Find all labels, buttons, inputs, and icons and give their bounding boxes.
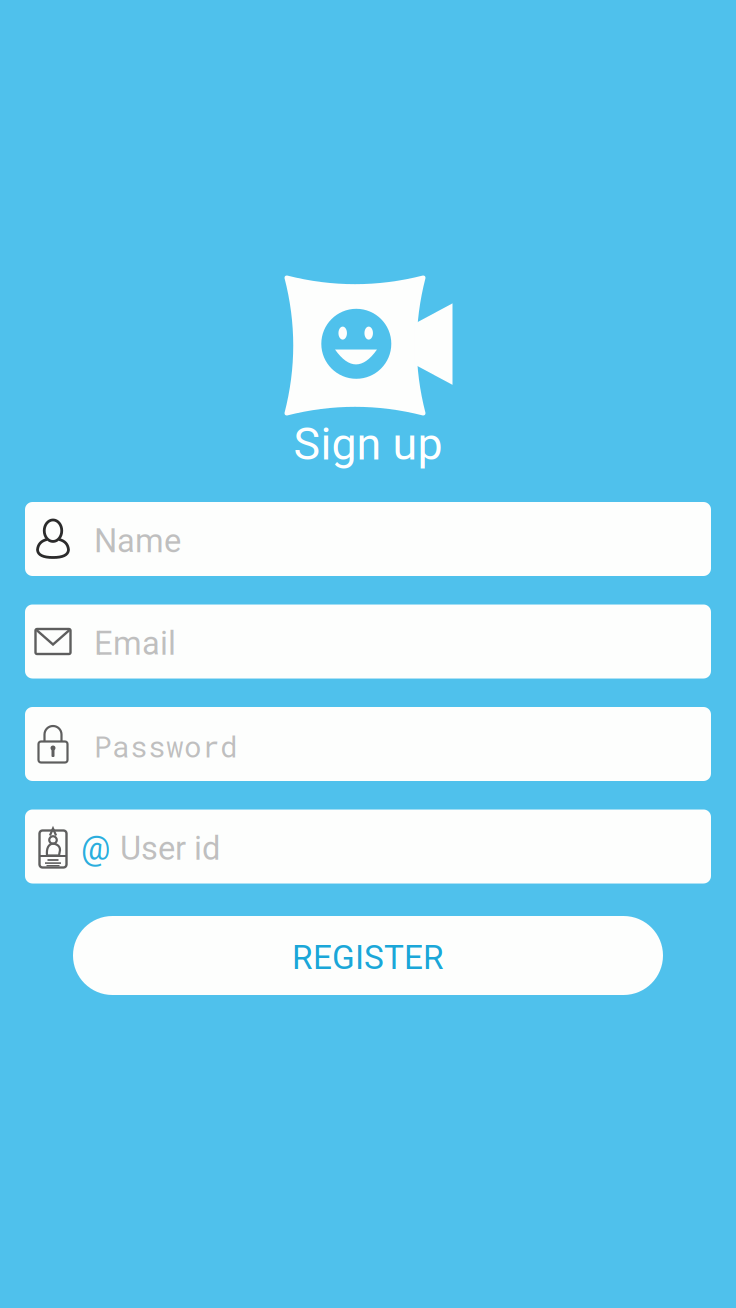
staticText: REGISTER — [292, 938, 444, 977]
button[interactable]: @ — [25, 809, 711, 883]
button[interactable]: REGISTER — [73, 916, 663, 995]
staticText: Name — [94, 522, 181, 560]
button[interactable]: Name — [25, 502, 711, 576]
button[interactable]: Email — [25, 604, 711, 678]
staticText: User id — [120, 829, 220, 868]
button[interactable]: Password — [25, 707, 711, 781]
staticText: Sign up — [293, 418, 442, 470]
staticText: Password — [94, 727, 238, 765]
staticText: Email — [94, 624, 176, 663]
staticText: @ — [81, 829, 110, 868]
